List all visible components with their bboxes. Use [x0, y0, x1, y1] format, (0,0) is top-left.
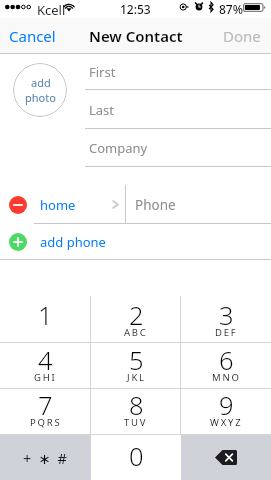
staticText: add: [31, 75, 51, 90]
staticText: Last: [89, 101, 115, 119]
staticText: Phone: [135, 196, 176, 214]
button[interactable]: 4: [0, 343, 91, 389]
staticText: JKL: [127, 371, 146, 384]
staticText: Done: [223, 26, 261, 46]
staticText: Kcell: [37, 1, 66, 19]
staticText: 1: [38, 298, 53, 333]
button[interactable]: 9: [181, 389, 271, 435]
staticText: home: [40, 196, 76, 214]
staticText: TUV: [124, 416, 148, 429]
staticText: Company: [89, 139, 148, 157]
staticText: 6: [219, 343, 234, 378]
staticText: 7: [38, 388, 53, 423]
staticText: + ∗ #: [23, 448, 69, 468]
button[interactable]: 7: [0, 389, 91, 435]
staticText: 2: [129, 298, 144, 333]
button[interactable]: 5: [91, 343, 181, 389]
button[interactable]: add phone: [0, 224, 271, 260]
staticText: 3: [219, 298, 234, 333]
staticText: ABC: [124, 326, 148, 339]
button[interactable]: First: [0, 54, 271, 90]
button[interactable]: 3: [181, 296, 271, 343]
staticText: photo: [25, 90, 56, 105]
staticText: 12:53: [120, 1, 151, 17]
button[interactable]: Last: [0, 90, 271, 129]
staticText: 8: [129, 388, 144, 423]
staticText: add phone: [40, 233, 106, 251]
button[interactable]: home: [0, 185, 271, 224]
staticText: WXYZ: [210, 416, 243, 429]
button[interactable]: Cancel: [0, 18, 64, 54]
staticText: 4: [38, 343, 53, 378]
staticText: New Contact: [89, 26, 183, 46]
button[interactable]: Company: [0, 129, 271, 167]
button[interactable]: add: [13, 63, 67, 117]
staticText: Cancel: [9, 26, 56, 46]
button[interactable]: 2: [91, 296, 181, 343]
staticText: First: [89, 63, 116, 81]
button[interactable]: 8: [91, 389, 181, 435]
button[interactable]: 0: [91, 435, 181, 480]
staticText: GHI: [34, 371, 57, 384]
staticText: 87%: [219, 1, 243, 17]
staticText: PQRS: [30, 416, 62, 429]
button[interactable]: 6: [181, 343, 271, 389]
button[interactable]: 1: [0, 296, 91, 343]
button[interactable]: Done: [215, 18, 271, 54]
staticText: DEF: [215, 326, 238, 339]
staticText: 5: [129, 343, 144, 378]
staticText: 9: [219, 388, 234, 423]
staticText: 0: [129, 439, 144, 474]
button[interactable]: Symbols: [0, 435, 91, 480]
staticText: MNO: [212, 371, 241, 384]
button[interactable]: Backspace: [181, 435, 271, 480]
